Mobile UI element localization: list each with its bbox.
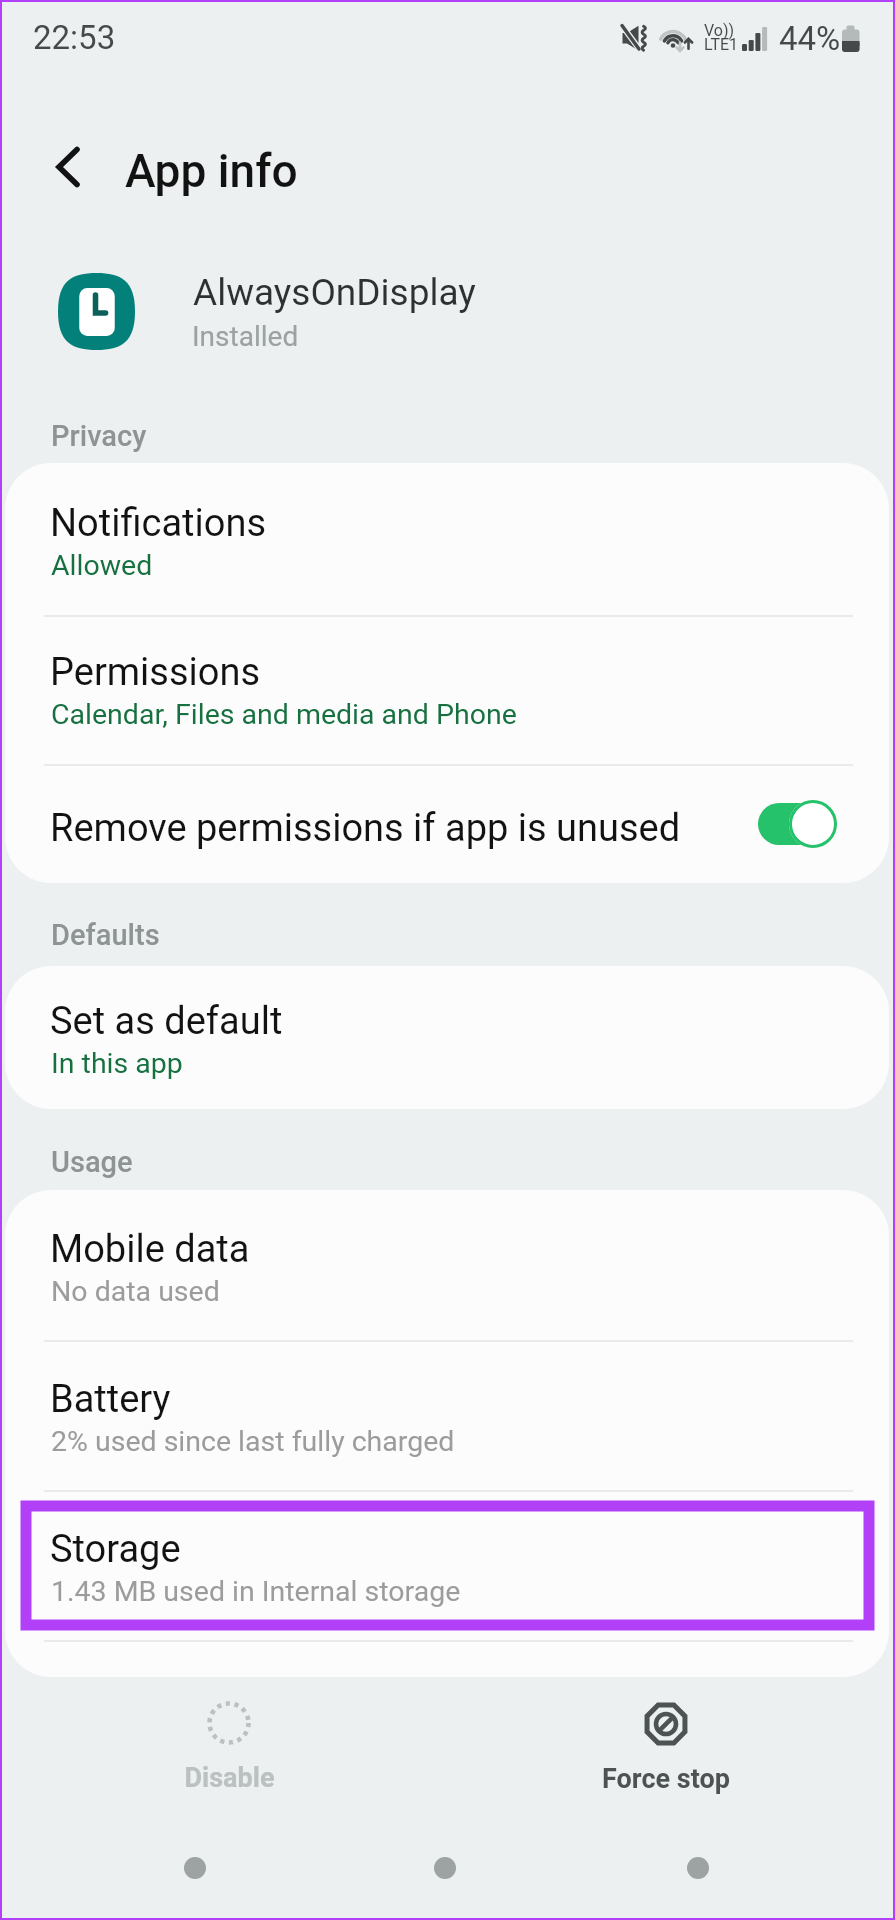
staticText: Remove permissions if app is unused — [50, 806, 681, 851]
staticText: Disable — [184, 1762, 275, 1794]
staticText: No data used — [51, 1275, 220, 1308]
staticText: App info — [125, 144, 298, 198]
button[interactable]: Mobile data — [5, 1190, 889, 1340]
button[interactable]: Storage — [5, 1491, 889, 1640]
staticText: Storage — [50, 1527, 181, 1572]
staticText: Calendar, Files and media and Phone — [51, 698, 517, 731]
staticText: Installed — [192, 320, 299, 353]
button[interactable]: Remove permissions if app is unused, on — [753, 798, 848, 850]
button[interactable]: Permissions — [5, 612, 889, 764]
staticText: 2% used since last fully charged — [51, 1425, 455, 1458]
staticText: Permissions — [50, 650, 261, 695]
staticText: Allowed — [51, 549, 153, 582]
staticText: Battery — [50, 1377, 171, 1422]
staticText: In this app — [51, 1047, 183, 1080]
staticText: Mobile data — [50, 1227, 250, 1272]
button[interactable]: Battery — [5, 1341, 889, 1490]
button[interactable]: Set as default — [5, 966, 889, 1109]
button[interactable]: Force stop — [498, 1686, 834, 1796]
staticText: 1.43 MB used in Internal storage — [51, 1575, 461, 1608]
staticText: Defaults — [51, 918, 160, 952]
staticText: 22:53 — [33, 18, 116, 57]
button[interactable]: Notifications — [5, 463, 889, 615]
staticText: AlwaysOnDisplay — [193, 271, 476, 314]
button[interactable]: Disable — [61, 1685, 397, 1795]
button[interactable]: Remove permissions if app is unused — [5, 765, 889, 883]
staticText: Set as default — [50, 999, 283, 1044]
button[interactable]: Back — [34, 134, 100, 200]
staticText: Usage — [51, 1145, 133, 1179]
staticText: Force stop — [602, 1763, 730, 1795]
staticText: Vo)) — [704, 21, 735, 40]
staticText: 44% — [779, 19, 841, 58]
staticText: LTE1 — [704, 35, 739, 54]
staticText: Privacy — [51, 419, 147, 453]
staticText: Notifications — [50, 501, 267, 546]
